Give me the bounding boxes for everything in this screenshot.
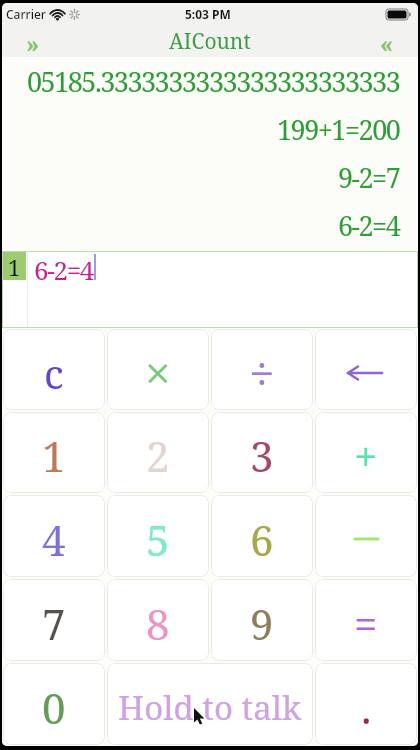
- staticText: 199+1=200: [277, 111, 400, 148]
- staticText: +: [354, 427, 378, 484]
- staticText: 6-2=4: [338, 207, 400, 244]
- staticText: ×: [145, 341, 171, 404]
- button[interactable]: «: [372, 27, 402, 55]
- staticText: »: [26, 27, 40, 55]
- staticText: 1: [8, 252, 21, 280]
- button[interactable]: c: [3, 329, 105, 410]
- staticText: Carrier: [6, 6, 46, 22]
- staticText: 8: [146, 595, 170, 652]
- button[interactable]: ×: [107, 329, 209, 410]
- staticText: Hold to talk: [118, 685, 302, 730]
- staticText: 2: [146, 427, 170, 484]
- staticText: 6-2=4: [34, 252, 93, 287]
- staticText: 05185.3333333333333333333333: [27, 63, 400, 100]
- staticText: 1: [42, 427, 66, 484]
- button[interactable]: [315, 329, 417, 410]
- staticText: 5:03 PM: [185, 6, 231, 22]
- button[interactable]: 9: [211, 579, 313, 661]
- staticText: «: [380, 27, 394, 55]
- staticText: ÷: [249, 341, 275, 404]
- staticText: AICount: [169, 27, 251, 56]
- button[interactable]: Hold to talk: [107, 663, 313, 745]
- button[interactable]: =: [315, 579, 417, 661]
- staticText: 4: [42, 511, 66, 568]
- staticText: 3: [250, 427, 274, 484]
- staticText: 5: [146, 511, 170, 568]
- button[interactable]: 3: [211, 412, 313, 493]
- staticText: .: [361, 679, 372, 736]
- staticText: c: [44, 346, 64, 400]
- button[interactable]: 8: [107, 579, 209, 661]
- button[interactable]: 6: [211, 495, 313, 577]
- staticText: 6: [250, 511, 274, 568]
- button[interactable]: 5: [107, 495, 209, 577]
- button[interactable]: 4: [3, 495, 105, 577]
- button[interactable]: [315, 495, 417, 577]
- button[interactable]: +: [315, 412, 417, 493]
- staticText: 7: [42, 595, 66, 652]
- button[interactable]: 0: [3, 663, 105, 745]
- staticText: =: [354, 595, 378, 652]
- button[interactable]: 7: [3, 579, 105, 661]
- staticText: 0: [42, 679, 66, 736]
- button[interactable]: 1: [3, 412, 105, 493]
- button[interactable]: »: [18, 27, 48, 55]
- button[interactable]: ÷: [211, 329, 313, 410]
- button[interactable]: 2: [107, 412, 209, 493]
- staticText: 9-2=7: [338, 159, 400, 196]
- staticText: 9: [250, 595, 274, 652]
- button[interactable]: .: [315, 663, 417, 745]
